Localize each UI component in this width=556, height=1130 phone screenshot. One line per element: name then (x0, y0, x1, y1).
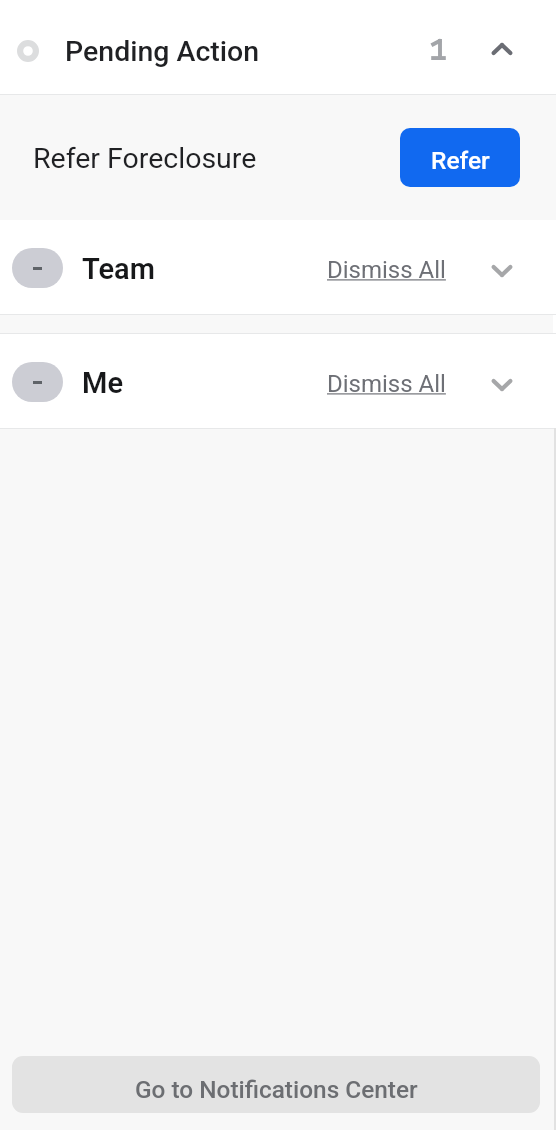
staticText: Me (82, 366, 123, 400)
staticText: Refer (431, 146, 490, 175)
staticText: Dismiss All (327, 370, 446, 398)
staticText: Refer Foreclosure (33, 142, 257, 175)
staticText: Team (82, 252, 155, 286)
button[interactable]: Dismiss All (327, 370, 446, 398)
button[interactable]: Refer (400, 128, 520, 187)
button[interactable]: Dismiss All (327, 256, 446, 284)
button[interactable]: Team (0, 220, 556, 314)
button[interactable]: Me (0, 334, 556, 428)
button[interactable]: Collapse Pending Action (480, 27, 524, 71)
staticText: Go to Notifications Center (135, 1075, 418, 1104)
button[interactable]: Expand Team (480, 249, 524, 293)
staticText: Dismiss All (327, 256, 446, 284)
staticText: Pending Action (65, 35, 260, 68)
button[interactable]: Pending Action (0, 0, 556, 94)
button[interactable]: Go to Notifications Center (12, 1056, 540, 1113)
button[interactable]: Expand Me (480, 363, 524, 407)
